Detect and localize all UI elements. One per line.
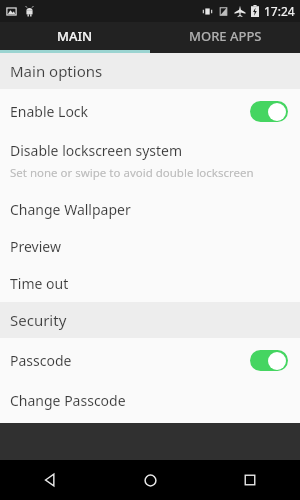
staticText: Preview bbox=[10, 237, 61, 256]
button[interactable]: Passcode bbox=[0, 338, 300, 382]
button[interactable]: Enable Lock bbox=[0, 89, 300, 133]
button[interactable]: Home bbox=[100, 460, 200, 500]
staticText: Passcode bbox=[10, 351, 72, 370]
staticText: Enable Lock bbox=[10, 102, 89, 121]
staticText: Security bbox=[10, 310, 67, 330]
staticText: MAIN bbox=[57, 27, 93, 45]
staticText: Main options bbox=[10, 61, 103, 81]
button[interactable]: Recent apps bbox=[200, 460, 300, 500]
staticText: Set none or swipe to avoid double locksc… bbox=[10, 165, 254, 181]
staticText: Time out bbox=[10, 274, 69, 293]
other: Toggle bbox=[250, 101, 288, 122]
staticText: MORE APPS bbox=[189, 27, 262, 45]
staticText: Disable lockscreen system bbox=[10, 141, 183, 160]
staticText: Change Passcode bbox=[10, 391, 126, 410]
button[interactable]: MORE APPS bbox=[150, 22, 300, 50]
other: Toggle bbox=[250, 350, 288, 371]
button[interactable]: Back bbox=[0, 460, 100, 500]
button[interactable]: Time out bbox=[0, 265, 300, 302]
button[interactable]: Change Passcode bbox=[0, 382, 300, 419]
button[interactable]: Change Wallpaper bbox=[0, 191, 300, 228]
button[interactable]: Disable lockscreen system bbox=[0, 133, 300, 191]
staticText: Change Wallpaper bbox=[10, 200, 131, 219]
button[interactable]: Preview bbox=[0, 228, 300, 265]
staticText: 17:24 bbox=[264, 3, 295, 19]
button[interactable]: MAIN bbox=[0, 22, 150, 50]
